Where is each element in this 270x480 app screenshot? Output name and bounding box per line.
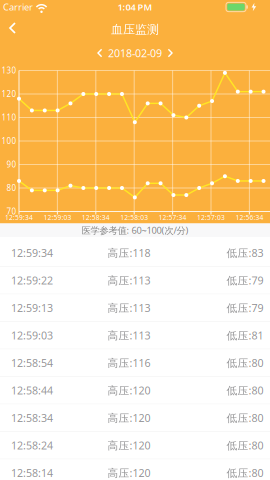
staticText: 1:04 PM: [117, 1, 152, 13]
staticText: 低压:83: [226, 246, 263, 260]
button[interactable]: 12:59:13: [0, 294, 270, 322]
staticText: 高压:120: [107, 383, 150, 397]
staticText: 低压:80: [226, 411, 263, 425]
staticText: 高压:116: [107, 356, 150, 370]
button[interactable]: 12:58:34: [0, 404, 270, 432]
staticText: 12:59:34: [5, 213, 33, 222]
staticText: 高压:113: [107, 328, 150, 342]
staticText: 高压:120: [107, 438, 150, 452]
staticText: 12:58:24: [11, 438, 53, 452]
button[interactable]: 2018-02-09: [80, 45, 190, 61]
button[interactable]: 12:58:44: [0, 377, 270, 404]
staticText: 低压:80: [226, 466, 263, 480]
staticText: 12:57:03: [197, 213, 225, 222]
staticText: 90: [6, 159, 16, 170]
staticText: 12:57:34: [159, 213, 187, 222]
staticText: 12:59:03: [43, 213, 71, 222]
staticText: 12:59:03: [11, 328, 53, 342]
staticText: 12:58:34: [82, 213, 110, 222]
staticText: 12:58:54: [11, 356, 53, 370]
staticText: 12:58:34: [11, 411, 53, 425]
staticText: 低压:81: [226, 328, 263, 342]
staticText: 低压:80: [226, 356, 263, 370]
button[interactable]: 12:59:34: [0, 239, 270, 267]
staticText: 高压:113: [107, 273, 150, 287]
staticText: 高压:120: [107, 411, 150, 425]
staticText: 低压:80: [226, 438, 263, 452]
staticText: 110: [1, 112, 16, 123]
staticText: 高压:120: [107, 466, 150, 480]
staticText: 12:56:34: [235, 213, 263, 222]
button[interactable]: 12:58:24: [0, 432, 270, 459]
staticText: 12:58:44: [11, 383, 53, 397]
staticText: 低压:79: [226, 301, 263, 315]
staticText: 12:59:13: [11, 301, 53, 315]
staticText: 2018-02-09: [108, 46, 162, 60]
button[interactable]: 12:59:22: [0, 267, 270, 294]
staticText: 12:59:22: [11, 273, 53, 287]
staticText: 高压:118: [107, 246, 150, 260]
staticText: 医学参考值: 60~100(次/分): [81, 224, 188, 236]
staticText: 12:58:14: [11, 466, 53, 480]
button[interactable]: 12:59:03: [0, 322, 270, 349]
staticText: 130: [1, 65, 16, 76]
staticText: 70: [6, 206, 16, 217]
staticText: 120: [1, 89, 16, 99]
staticText: 高压:113: [107, 301, 150, 315]
staticText: 100: [1, 136, 16, 146]
staticText: 低压:79: [226, 273, 263, 287]
staticText: 80: [6, 183, 16, 193]
staticText: 血压监测: [111, 22, 159, 37]
staticText: 低压:80: [226, 383, 263, 397]
staticText: 12:59:34: [11, 246, 53, 260]
staticText: Carrier: [3, 1, 33, 13]
button[interactable]: Back: [0, 0, 24, 30]
button[interactable]: 12:58:14: [0, 459, 270, 480]
button[interactable]: 12:58:54: [0, 349, 270, 377]
staticText: 12:58:03: [120, 213, 148, 222]
